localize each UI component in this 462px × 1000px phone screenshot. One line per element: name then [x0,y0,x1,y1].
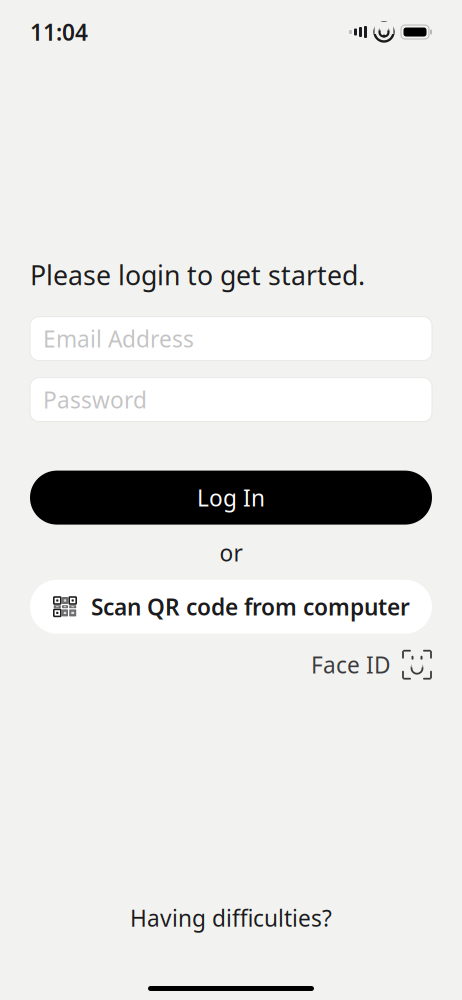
button[interactable]: Having difficulties? [110,895,352,941]
staticText: Having difficulties? [130,903,332,933]
staticText: Please login to get started. [30,257,365,293]
button[interactable]: Scan QR code from computer [30,580,432,634]
staticText: 11:04 [30,17,88,47]
staticText: Face ID [311,650,391,680]
staticText: Password [43,385,147,415]
button[interactable]: Log In [30,471,432,525]
staticText: Log In [197,483,265,513]
staticText: Email Address [43,324,194,354]
staticText: Scan QR code from computer [91,592,410,622]
button[interactable]: Face ID [0,648,462,682]
staticText: or [219,538,242,568]
